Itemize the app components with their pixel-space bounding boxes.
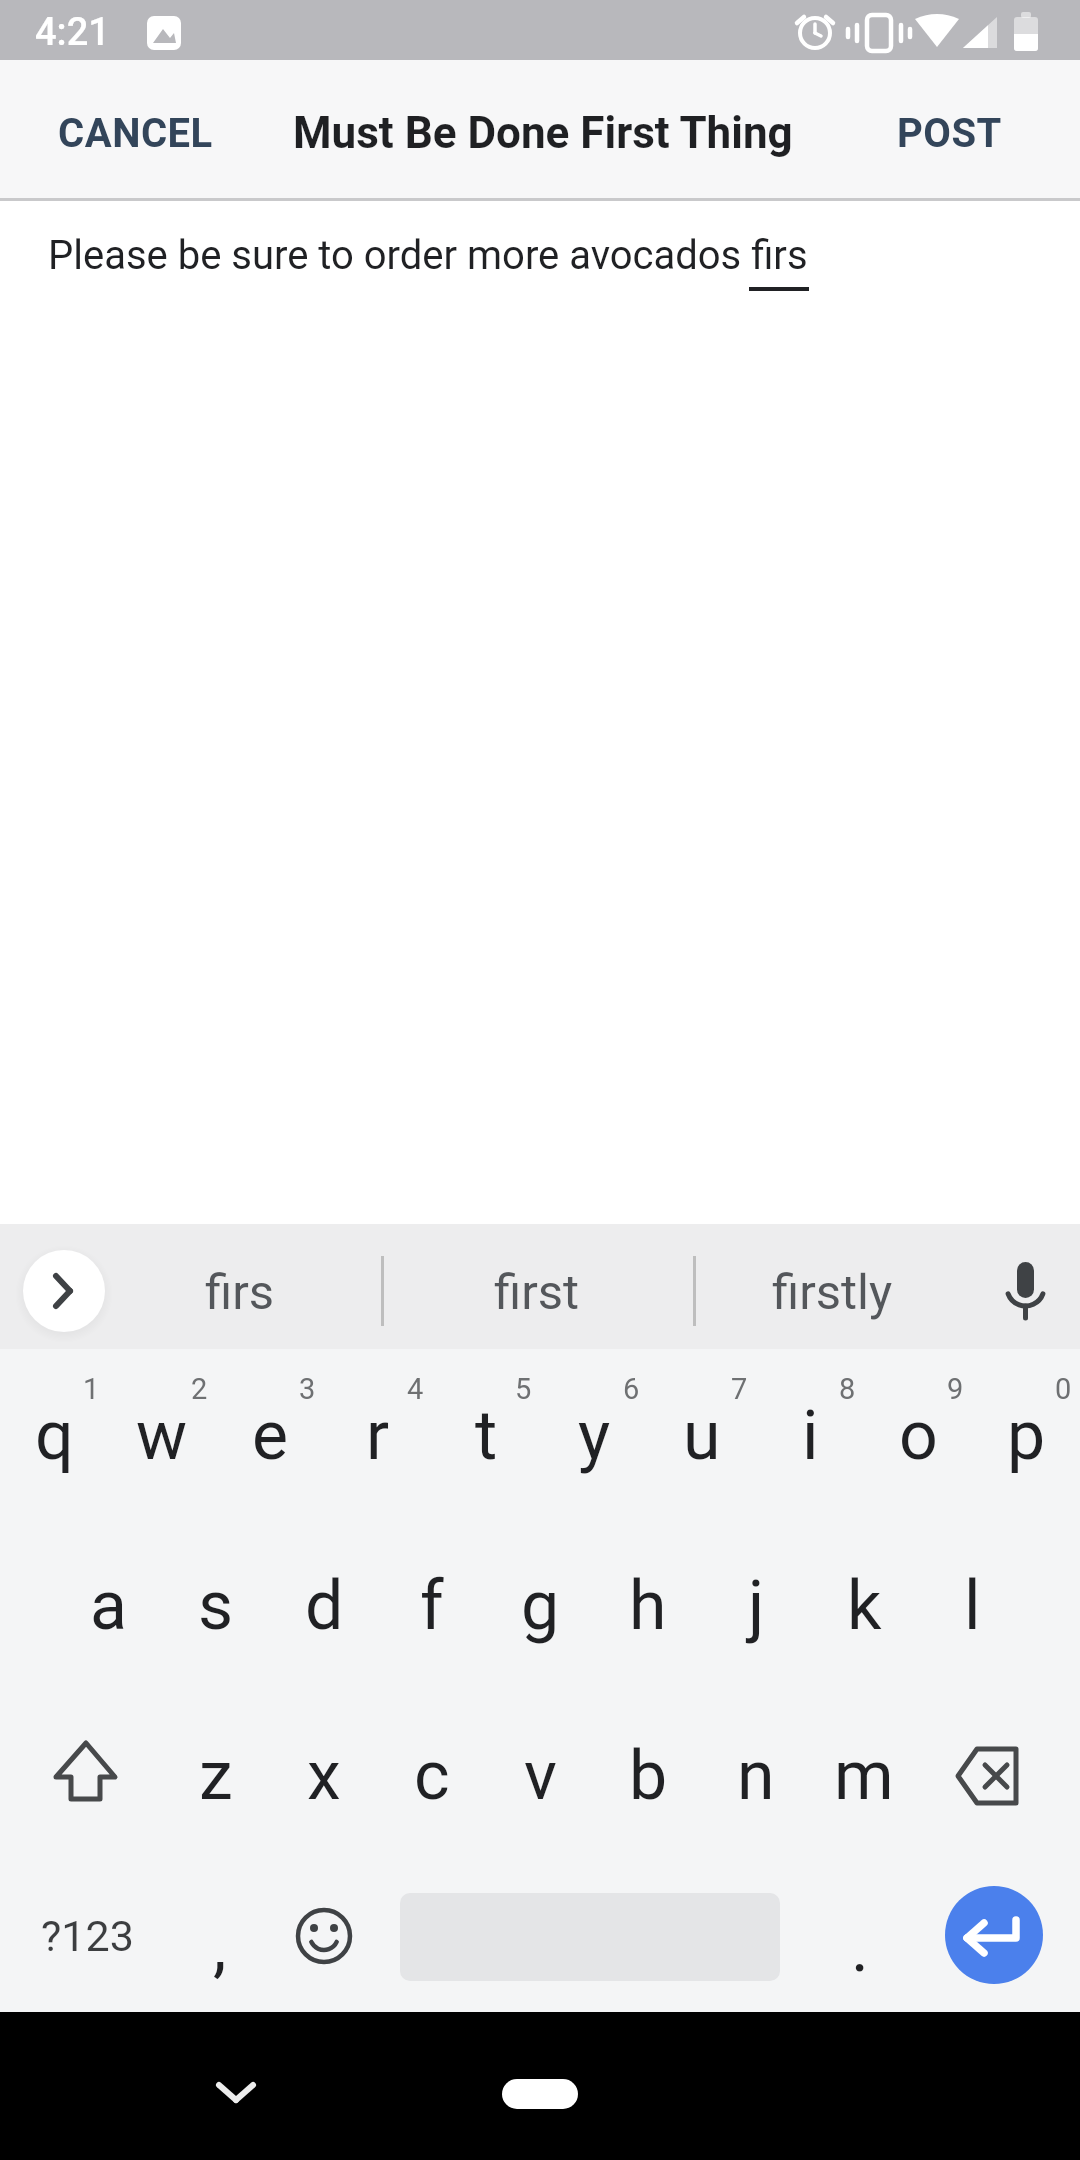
- staticText: Must Be Done First Thing: [293, 107, 793, 159]
- button[interactable]: [990, 1255, 1062, 1327]
- staticText: 0: [1055, 1372, 1072, 1406]
- staticText: y: [578, 1396, 611, 1476]
- staticText: b: [629, 1736, 668, 1816]
- staticText: 3: [299, 1372, 316, 1406]
- button[interactable]: h: [595, 1526, 701, 1686]
- staticText: n: [737, 1736, 775, 1816]
- staticText: k: [847, 1566, 882, 1646]
- button[interactable]: z: [163, 1696, 269, 1856]
- staticText: c: [414, 1736, 450, 1816]
- staticText: z: [199, 1736, 233, 1816]
- staticText: 6: [623, 1372, 640, 1406]
- button[interactable]: t: [433, 1356, 539, 1516]
- button[interactable]: l: [919, 1526, 1025, 1686]
- button[interactable]: c: [379, 1696, 485, 1856]
- staticText: firstly: [772, 1264, 893, 1321]
- button[interactable]: y: [541, 1356, 647, 1516]
- button[interactable]: d: [271, 1526, 377, 1686]
- staticText: w: [136, 1396, 188, 1476]
- button[interactable]: [288, 1900, 360, 1972]
- button[interactable]: w: [109, 1356, 215, 1516]
- button[interactable]: x: [271, 1696, 377, 1856]
- button[interactable]: ,: [180, 1891, 260, 2001]
- staticText: 2: [191, 1372, 208, 1406]
- staticText: .: [851, 1908, 869, 1988]
- button[interactable]: m: [811, 1696, 917, 1856]
- staticText: 4:21: [35, 10, 110, 55]
- staticText: first: [494, 1264, 580, 1321]
- staticText: p: [1007, 1396, 1046, 1476]
- staticText: ,: [213, 1906, 227, 1986]
- button[interactable]: e: [217, 1356, 323, 1516]
- staticText: d: [305, 1566, 344, 1646]
- button[interactable]: [200, 2060, 272, 2126]
- button[interactable]: b: [595, 1696, 701, 1856]
- button[interactable]: [936, 1711, 1056, 1841]
- staticText: ?123: [41, 1911, 134, 1961]
- button[interactable]: [502, 2079, 578, 2109]
- button[interactable]: a: [55, 1526, 161, 1686]
- staticText: 4: [407, 1372, 424, 1406]
- staticText: e: [252, 1396, 289, 1476]
- staticText: s: [198, 1566, 234, 1646]
- staticText: i: [802, 1396, 819, 1476]
- staticText: firs: [205, 1264, 275, 1321]
- button[interactable]: q: [1, 1356, 107, 1516]
- button[interactable]: [30, 1711, 150, 1841]
- button[interactable]: .: [820, 1893, 900, 2003]
- button[interactable]: POST: [859, 98, 1039, 168]
- button[interactable]: ?123: [17, 1891, 157, 1981]
- staticText: x: [307, 1736, 341, 1816]
- button[interactable]: p: [973, 1356, 1079, 1516]
- staticText: u: [683, 1396, 721, 1476]
- button[interactable]: n: [703, 1696, 809, 1856]
- button[interactable]: i: [757, 1356, 863, 1516]
- button[interactable]: g: [487, 1526, 593, 1686]
- staticText: t: [475, 1396, 498, 1476]
- button[interactable]: f: [379, 1526, 485, 1686]
- staticText: 1: [83, 1372, 100, 1406]
- button[interactable]: firstly: [702, 1247, 962, 1337]
- staticText: l: [964, 1566, 981, 1646]
- button[interactable]: first: [407, 1247, 667, 1337]
- button[interactable]: [945, 1886, 1043, 1984]
- staticText: f: [420, 1566, 444, 1646]
- staticText: v: [524, 1736, 557, 1816]
- staticText: r: [366, 1396, 390, 1476]
- staticText: a: [90, 1566, 127, 1646]
- staticText: 7: [731, 1372, 748, 1406]
- staticText: h: [629, 1566, 667, 1646]
- button[interactable]: v: [487, 1696, 593, 1856]
- staticText: 5: [515, 1372, 532, 1406]
- staticText: Please be sure to order more avocados fi…: [48, 232, 808, 279]
- button[interactable]: u: [649, 1356, 755, 1516]
- staticText: m: [834, 1736, 894, 1816]
- staticText: CANCEL: [58, 110, 213, 157]
- button[interactable]: r: [325, 1356, 431, 1516]
- staticText: 9: [947, 1372, 964, 1406]
- button[interactable]: o: [865, 1356, 971, 1516]
- button[interactable]: s: [163, 1526, 269, 1686]
- staticText: q: [35, 1396, 74, 1476]
- button[interactable]: firs: [110, 1247, 370, 1337]
- button[interactable]: [23, 1250, 105, 1332]
- staticText: j: [748, 1566, 765, 1646]
- staticText: g: [521, 1566, 560, 1646]
- button[interactable]: k: [811, 1526, 917, 1686]
- button[interactable]: CANCEL: [25, 98, 245, 168]
- button[interactable]: j: [703, 1526, 809, 1686]
- staticText: POST: [897, 110, 1002, 157]
- staticText: o: [899, 1396, 938, 1476]
- staticText: 8: [839, 1372, 856, 1406]
